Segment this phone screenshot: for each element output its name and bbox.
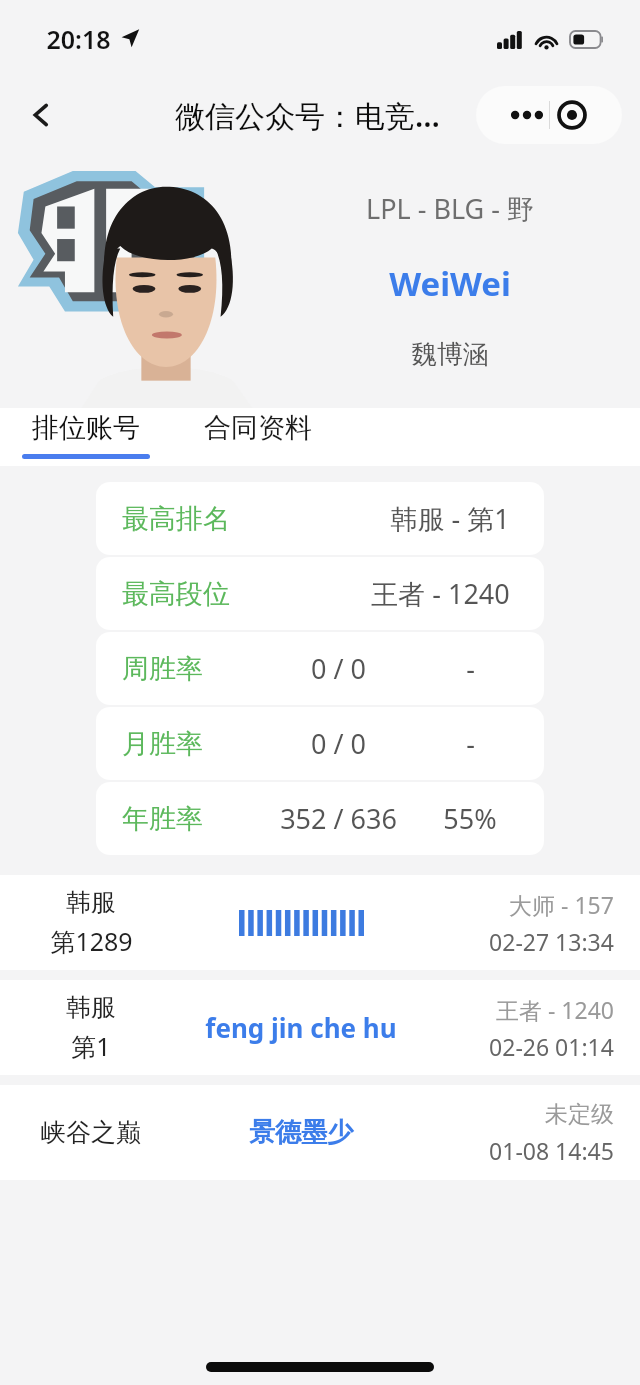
- staticText: 20:18: [46, 22, 111, 56]
- staticText: 韩服 - 第1: [390, 500, 510, 537]
- staticText: 未定级: [545, 1100, 614, 1129]
- button[interactable]: 合同资料: [172, 411, 344, 461]
- staticText: -: [466, 650, 475, 687]
- staticText: 02-26 01:14: [489, 1031, 614, 1062]
- staticText: 峡谷之巅: [41, 1117, 141, 1148]
- staticText: WeiWei: [389, 261, 511, 306]
- staticText: 周胜率: [122, 652, 203, 686]
- button[interactable]: 韩服: [0, 980, 640, 1075]
- button[interactable]: 排位账号: [0, 411, 172, 466]
- staticText: 王者 - 1240: [371, 575, 510, 612]
- staticText: 352 / 636: [280, 800, 397, 837]
- staticText: 0 / 0: [311, 725, 366, 762]
- button[interactable]: 年胜率: [96, 782, 544, 855]
- staticText: 景德墨少: [249, 1116, 353, 1149]
- staticText: 微信公众号：电竞…: [175, 95, 440, 136]
- staticText: 韩服: [66, 887, 116, 918]
- staticText: 55%: [443, 800, 497, 837]
- button[interactable]: Back: [14, 88, 68, 142]
- button[interactable]: 月胜率: [96, 707, 544, 780]
- staticText: 年胜率: [122, 802, 203, 836]
- button[interactable]: 周胜率: [96, 632, 544, 705]
- staticText: 第1: [71, 1029, 111, 1063]
- button[interactable]: 峡谷之巅: [0, 1085, 640, 1180]
- staticText: 王者 - 1240: [496, 994, 614, 1025]
- staticText: 韩服: [66, 992, 116, 1023]
- staticText: 月胜率: [122, 727, 203, 761]
- button[interactable]: 最高排名: [96, 482, 544, 555]
- staticText: 最高段位: [122, 577, 230, 611]
- staticText: 01-08 14:45: [489, 1135, 614, 1166]
- staticText: 大师 - 157: [509, 889, 614, 920]
- staticText: LPL - BLG - 野: [366, 190, 534, 227]
- staticText: feng jin che hu: [205, 1010, 397, 1045]
- button[interactable]: More options: [476, 86, 622, 144]
- staticText: 第1289: [50, 924, 133, 958]
- staticText: 合同资料: [204, 411, 312, 445]
- staticText: -: [466, 725, 475, 762]
- staticText: 魏博涵: [411, 338, 489, 371]
- staticText: 0 / 0: [311, 650, 366, 687]
- button[interactable]: 韩服: [0, 875, 640, 970]
- button[interactable]: 最高段位: [96, 557, 544, 630]
- staticText: 排位账号: [32, 411, 140, 445]
- staticText: 02-27 13:34: [489, 926, 614, 957]
- staticText: 最高排名: [122, 502, 230, 536]
